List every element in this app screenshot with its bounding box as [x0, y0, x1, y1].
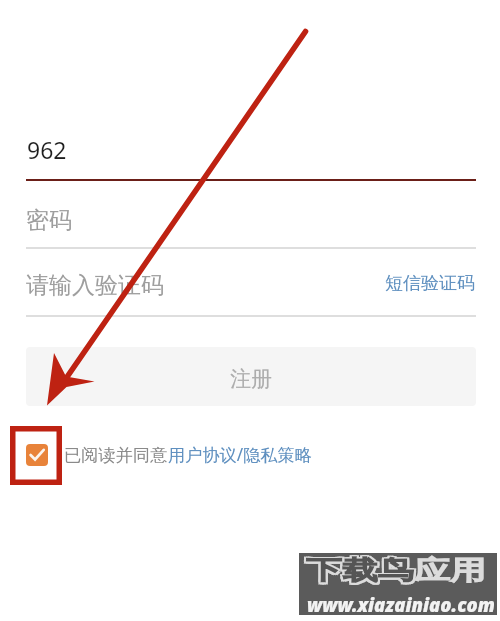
- other: Agreement checked: [26, 444, 48, 466]
- staticText: 注册: [230, 366, 272, 392]
- staticText: 下载鸟: [308, 554, 416, 586]
- staticText: 下载鸟: [306, 553, 414, 585]
- staticText: 962: [27, 134, 67, 165]
- staticText: 已阅读并同意: [64, 444, 168, 466]
- staticText: 下载鸟: [306, 554, 414, 586]
- staticText: 下载鸟: [306, 555, 414, 588]
- staticText: 请输入验证码: [26, 271, 164, 300]
- button[interactable]: 用户协议/隐私策略: [168, 443, 312, 466]
- staticText: 下载鸟: [308, 555, 416, 588]
- staticText: 密码: [26, 206, 72, 235]
- staticText: 下载鸟: [304, 555, 412, 588]
- button[interactable]: 短信验证码: [385, 272, 475, 295]
- button[interactable]: 请输入验证码: [0, 258, 500, 317]
- staticText: 短信验证码: [385, 272, 475, 295]
- button[interactable]: 注册: [26, 347, 476, 406]
- staticText: 下载鸟: [304, 554, 412, 586]
- staticText: www.xiazainiao.com: [307, 592, 495, 617]
- staticText: 下载鸟: [308, 553, 416, 585]
- staticText: 下载鸟: [304, 553, 412, 585]
- button[interactable]: 962: [0, 122, 500, 181]
- button[interactable]: 密码: [0, 190, 500, 249]
- staticText: 应用: [414, 554, 486, 586]
- button[interactable]: Agreement checked: [26, 443, 312, 466]
